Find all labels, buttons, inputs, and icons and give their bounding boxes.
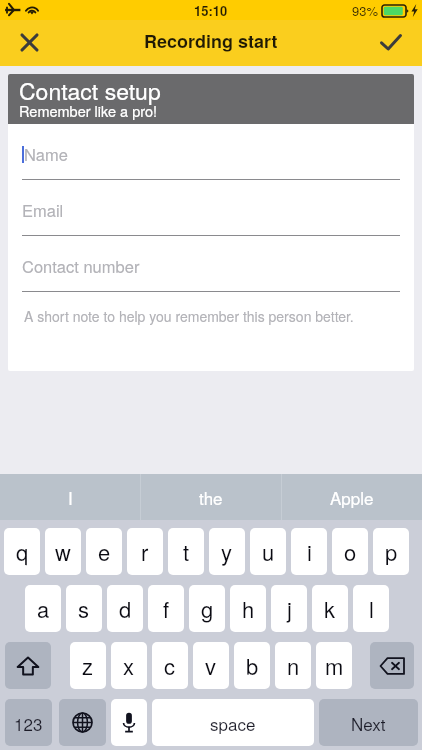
button[interactable]: h [230,585,266,632]
staticText: I [68,485,73,509]
staticText: the [199,485,223,509]
button[interactable]: the [141,474,281,520]
button[interactable]: y [209,528,245,575]
staticText: 123 [14,711,43,735]
other: Backspace [380,657,405,675]
button[interactable]: Contact number [8,236,414,292]
staticText: e [98,536,111,568]
staticText: i [307,536,312,568]
button[interactable]: Backspace [370,642,414,689]
button[interactable]: Next [319,699,418,746]
button[interactable]: g [189,585,225,632]
button[interactable]: e [86,528,122,575]
staticText: 93% [352,1,379,20]
staticText: j [287,593,292,625]
other: Shift [17,656,39,676]
button[interactable]: d [107,585,143,632]
button[interactable]: i [291,528,327,575]
button[interactable]: s [66,585,102,632]
button[interactable]: k [312,585,348,632]
staticText: l [369,593,374,625]
button[interactable]: z [70,642,106,689]
button[interactable]: Close [0,20,58,66]
button[interactable]: c [152,642,188,689]
staticText: y [221,536,233,568]
staticText: Email [22,198,64,222]
staticText: v [205,650,217,682]
staticText: m [325,650,344,682]
staticText: Name [24,142,68,166]
staticText: u [262,536,275,568]
staticText: space [210,711,256,735]
button[interactable]: w [45,528,81,575]
button[interactable]: I [0,474,140,520]
other: Switch keyboard [72,712,93,733]
button[interactable]: Shift [5,642,51,689]
staticText: w [55,536,71,568]
button[interactable]: Switch keyboard [59,699,106,746]
staticText: h [242,593,255,625]
staticText: r [141,536,149,568]
staticText: d [119,593,132,625]
staticText: Remember like a pro! [19,100,158,121]
staticText: Next [351,711,386,735]
button[interactable]: t [168,528,204,575]
staticText: f [163,593,170,625]
staticText: Recording start [144,28,278,54]
staticText: b [246,650,259,682]
staticText: o [344,536,357,568]
staticText: s [78,593,90,625]
button[interactable]: v [193,642,229,689]
button[interactable]: q [4,528,40,575]
button[interactable]: r [127,528,163,575]
button[interactable]: 123 [5,699,52,746]
staticText: a [37,593,50,625]
button[interactable]: Name [8,124,414,180]
staticText: z [82,650,94,682]
button[interactable]: a [25,585,61,632]
staticText: x [123,650,135,682]
button[interactable]: o [332,528,368,575]
staticText: Apple [330,485,374,509]
button[interactable]: space [152,699,314,746]
staticText: g [201,593,214,625]
button[interactable]: b [234,642,270,689]
button[interactable]: Apple [282,474,422,520]
staticText: t [183,536,190,568]
staticText: Contact number [22,254,140,278]
button[interactable]: u [250,528,286,575]
button[interactable]: Confirm [360,20,422,66]
button[interactable]: m [316,642,352,689]
staticText: c [164,650,176,682]
button[interactable]: l [353,585,389,632]
staticText: Contact setup [19,74,161,107]
button[interactable]: p [373,528,409,575]
button[interactable]: n [275,642,311,689]
staticText: q [16,536,29,568]
button[interactable]: x [111,642,147,689]
staticText: A short note to help you remember this p… [24,306,354,326]
staticText: 15:10 [194,1,228,20]
staticText: p [385,536,398,568]
button[interactable]: Email [8,180,414,236]
button[interactable]: f [148,585,184,632]
staticText: n [287,650,300,682]
button[interactable]: Dictate [111,699,147,746]
staticText: k [324,593,336,625]
button[interactable]: j [271,585,307,632]
